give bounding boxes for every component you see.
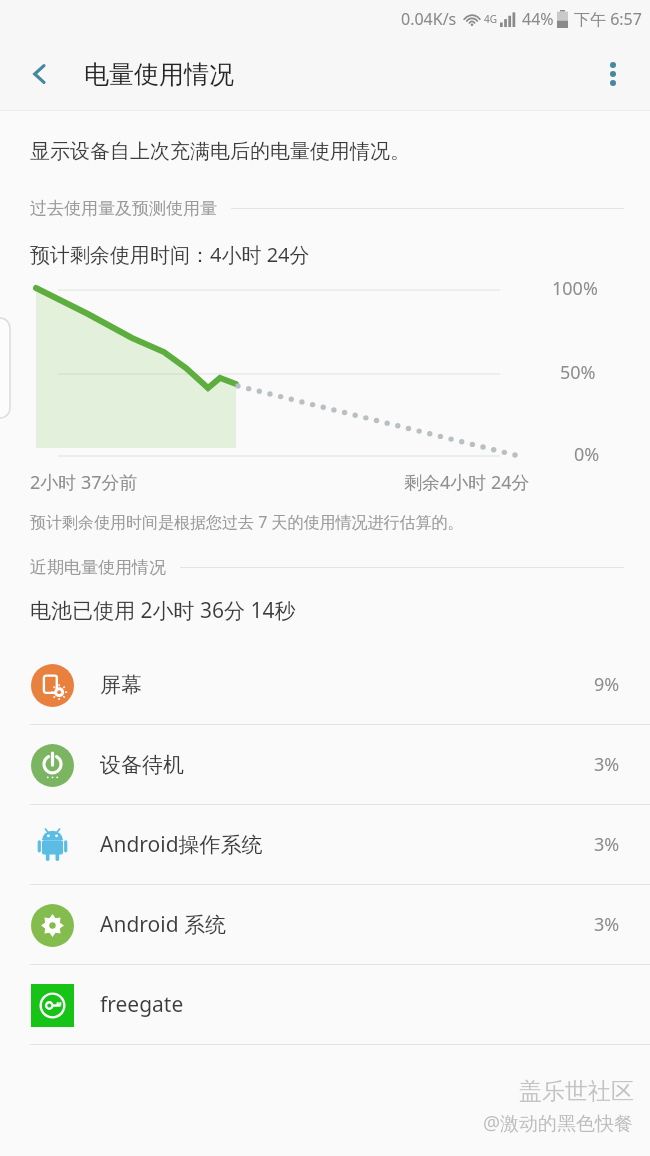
staticText: 0.04K/s	[401, 8, 457, 30]
staticText: 3%	[594, 752, 620, 777]
button[interactable]: freegate	[0, 965, 650, 1044]
staticText: freegate	[100, 990, 184, 1019]
staticText: 显示设备自上次充满电后的电量使用情况。	[30, 139, 410, 164]
staticText: 9%	[594, 672, 620, 697]
button[interactable]: More options	[588, 49, 638, 99]
staticText: 4G	[484, 12, 497, 26]
staticText: 电池已使用 2小时 36分 14秒	[30, 596, 296, 625]
staticText: 100%	[552, 276, 598, 301]
staticText: 下午 6:57	[574, 8, 642, 30]
button[interactable]: 设备待机	[0, 725, 650, 804]
staticText: 预计剩余使用时间是根据您过去 7 天的使用情况进行估算的。	[30, 511, 464, 533]
staticText: 0%	[574, 442, 600, 467]
staticText: Android 系统	[100, 910, 227, 939]
staticText: 屏幕	[100, 672, 142, 698]
button[interactable]: Android 系统	[0, 885, 650, 964]
button[interactable]: 屏幕	[0, 645, 650, 724]
staticText: 3%	[594, 832, 620, 857]
staticText: 2小时 37分前	[30, 470, 138, 495]
staticText: 预计剩余使用时间：4小时 24分	[30, 241, 310, 268]
button[interactable]: Android操作系统	[0, 805, 650, 884]
staticText: Android操作系统	[100, 830, 263, 859]
staticText: 50%	[560, 360, 596, 385]
staticText: @激动的黑色快餐	[483, 1110, 634, 1136]
staticText: 3%	[594, 912, 620, 937]
staticText: 过去使用量及预测使用量	[30, 198, 217, 219]
staticText: 剩余4小时 24分	[404, 470, 530, 495]
button[interactable]: Back	[14, 48, 66, 100]
staticText: 近期电量使用情况	[30, 557, 166, 578]
staticText: 设备待机	[100, 752, 184, 778]
staticText: 盖乐世社区	[519, 1077, 634, 1106]
staticText: 电量使用情况	[84, 59, 234, 90]
staticText: 44%	[522, 8, 554, 30]
